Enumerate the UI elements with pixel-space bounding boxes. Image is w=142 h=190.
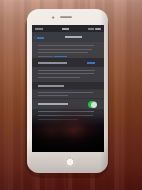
button[interactable] xyxy=(32,99,104,109)
button[interactable]: Home xyxy=(65,157,75,167)
button[interactable]: Back xyxy=(32,34,46,41)
